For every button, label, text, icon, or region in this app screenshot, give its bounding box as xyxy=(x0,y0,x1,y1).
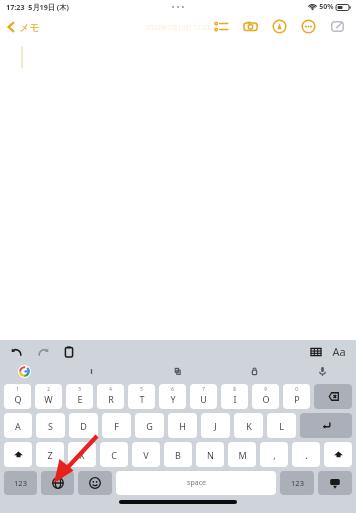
button[interactable]: Checklist xyxy=(207,13,236,40)
button[interactable]: Return xyxy=(300,413,352,438)
staticText: K xyxy=(246,420,252,432)
button[interactable]: B xyxy=(164,442,192,467)
button[interactable]: N xyxy=(196,442,224,467)
button[interactable]: D xyxy=(69,413,98,438)
staticText: . xyxy=(305,449,308,461)
staticText: A xyxy=(15,420,21,432)
staticText: 6 xyxy=(171,386,174,392)
button[interactable]: メモ xyxy=(0,20,46,34)
staticText: Z xyxy=(47,449,53,461)
button[interactable]: 2 xyxy=(35,384,62,409)
button[interactable]: Suggestion xyxy=(48,362,134,381)
button[interactable]: 123 xyxy=(280,471,314,495)
button[interactable]: M xyxy=(228,442,256,467)
button[interactable]: H xyxy=(168,413,197,438)
button[interactable]: 0 xyxy=(283,384,310,409)
staticText: 1 xyxy=(16,386,19,392)
button[interactable]: Paste xyxy=(60,343,77,360)
button[interactable]: Shift xyxy=(4,442,32,467)
staticText: H xyxy=(179,420,186,432)
staticText: 2022年5月19日 17:23 xyxy=(146,23,210,32)
button[interactable]: Switch language xyxy=(41,471,74,495)
staticText: P xyxy=(294,393,300,405)
button[interactable]: F xyxy=(102,413,131,438)
staticText: I xyxy=(233,393,237,405)
button[interactable]: 9 xyxy=(252,384,279,409)
button[interactable]: X xyxy=(68,442,96,467)
staticText: 50% xyxy=(319,2,334,12)
button[interactable]: Camera xyxy=(236,13,265,40)
staticText: space xyxy=(187,478,206,488)
button[interactable]: L xyxy=(267,413,296,438)
button[interactable]: 8 xyxy=(221,384,248,409)
button[interactable]: Table xyxy=(307,343,324,360)
button[interactable]: 3 xyxy=(66,384,93,409)
button[interactable]: Google xyxy=(0,362,48,381)
staticText: N xyxy=(207,449,214,461)
button[interactable]: Suggestion xyxy=(220,362,288,381)
button[interactable]: Emoji xyxy=(78,471,112,495)
button[interactable]: . xyxy=(292,442,320,467)
staticText: 2 xyxy=(47,386,50,392)
staticText: 3 xyxy=(78,386,81,392)
button[interactable]: space xyxy=(116,471,276,495)
staticText: D xyxy=(80,420,87,432)
button[interactable]: S xyxy=(36,413,65,438)
staticText: C xyxy=(111,449,117,461)
button[interactable]: 123 xyxy=(4,471,37,495)
button[interactable]: Hide keyboard xyxy=(318,471,352,495)
button[interactable]: 4 xyxy=(97,384,124,409)
button[interactable]: 1 xyxy=(4,384,31,409)
staticText: Aa xyxy=(332,344,346,359)
button[interactable]: V xyxy=(132,442,160,467)
staticText: 8 xyxy=(233,386,236,392)
staticText: 5 xyxy=(140,386,143,392)
staticText: L xyxy=(279,420,284,432)
staticText: , xyxy=(273,449,276,461)
staticText: U xyxy=(200,393,207,405)
staticText: X xyxy=(79,449,85,461)
button[interactable]: 6 xyxy=(159,384,186,409)
button[interactable]: Suggestion xyxy=(134,362,220,381)
button[interactable]: 7 xyxy=(190,384,217,409)
staticText: M xyxy=(238,449,247,461)
staticText: 17:23 5月19日 (木) xyxy=(6,2,69,12)
staticText: 9 xyxy=(264,386,267,392)
staticText: メモ xyxy=(19,21,40,34)
staticText: 123 xyxy=(14,478,27,488)
staticText: E xyxy=(77,393,83,405)
button[interactable]: Aa xyxy=(331,344,347,359)
button[interactable]: Backspace xyxy=(314,384,352,409)
staticText: 123 xyxy=(291,478,304,488)
staticText: V xyxy=(143,449,149,461)
button[interactable]: K xyxy=(234,413,263,438)
button[interactable]: C xyxy=(100,442,128,467)
button[interactable]: Shift xyxy=(324,442,352,467)
staticText: B xyxy=(175,449,181,461)
button[interactable]: A xyxy=(4,413,32,438)
button[interactable]: Markup xyxy=(265,13,294,40)
button[interactable]: More xyxy=(294,13,323,40)
button[interactable]: Z xyxy=(36,442,64,467)
staticText: G xyxy=(146,420,153,432)
button[interactable]: Redo xyxy=(34,343,51,360)
staticText: O xyxy=(262,393,270,405)
staticText: 7 xyxy=(202,386,205,392)
staticText: S xyxy=(48,420,53,432)
staticText: W xyxy=(44,393,53,405)
staticText: F xyxy=(114,420,119,432)
button[interactable]: , xyxy=(260,442,288,467)
button[interactable]: Voice input xyxy=(288,362,356,381)
button[interactable]: Undo xyxy=(8,343,25,360)
button[interactable]: Compose xyxy=(323,13,352,40)
staticText: 4 xyxy=(109,386,112,392)
button[interactable]: G xyxy=(135,413,164,438)
staticText: Q xyxy=(14,393,22,405)
staticText: Y xyxy=(170,393,176,405)
staticText: T xyxy=(139,393,145,405)
staticText: J xyxy=(214,420,217,432)
staticText: 0 xyxy=(295,386,298,392)
button[interactable]: J xyxy=(201,413,230,438)
staticText: R xyxy=(108,393,114,405)
button[interactable]: 5 xyxy=(128,384,155,409)
